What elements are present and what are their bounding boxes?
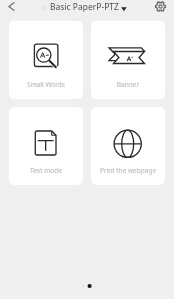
button[interactable]: Basic PaperP-PTZ	[42, 1, 127, 13]
staticText: Basic PaperP-PTZ	[50, 1, 119, 13]
button[interactable]: Print the webpage	[91, 107, 165, 185]
button[interactable]: Text mode	[9, 107, 83, 185]
button[interactable]: Settings	[155, 1, 166, 12]
staticText: Text mode	[9, 166, 83, 175]
staticText: Small Words	[9, 80, 83, 89]
staticText: Print the webpage	[91, 166, 165, 175]
button[interactable]: Back	[5, 0, 18, 13]
button[interactable]: Banner	[91, 21, 165, 99]
button[interactable]: Small Words	[9, 21, 83, 99]
staticText: Banner	[91, 80, 165, 89]
